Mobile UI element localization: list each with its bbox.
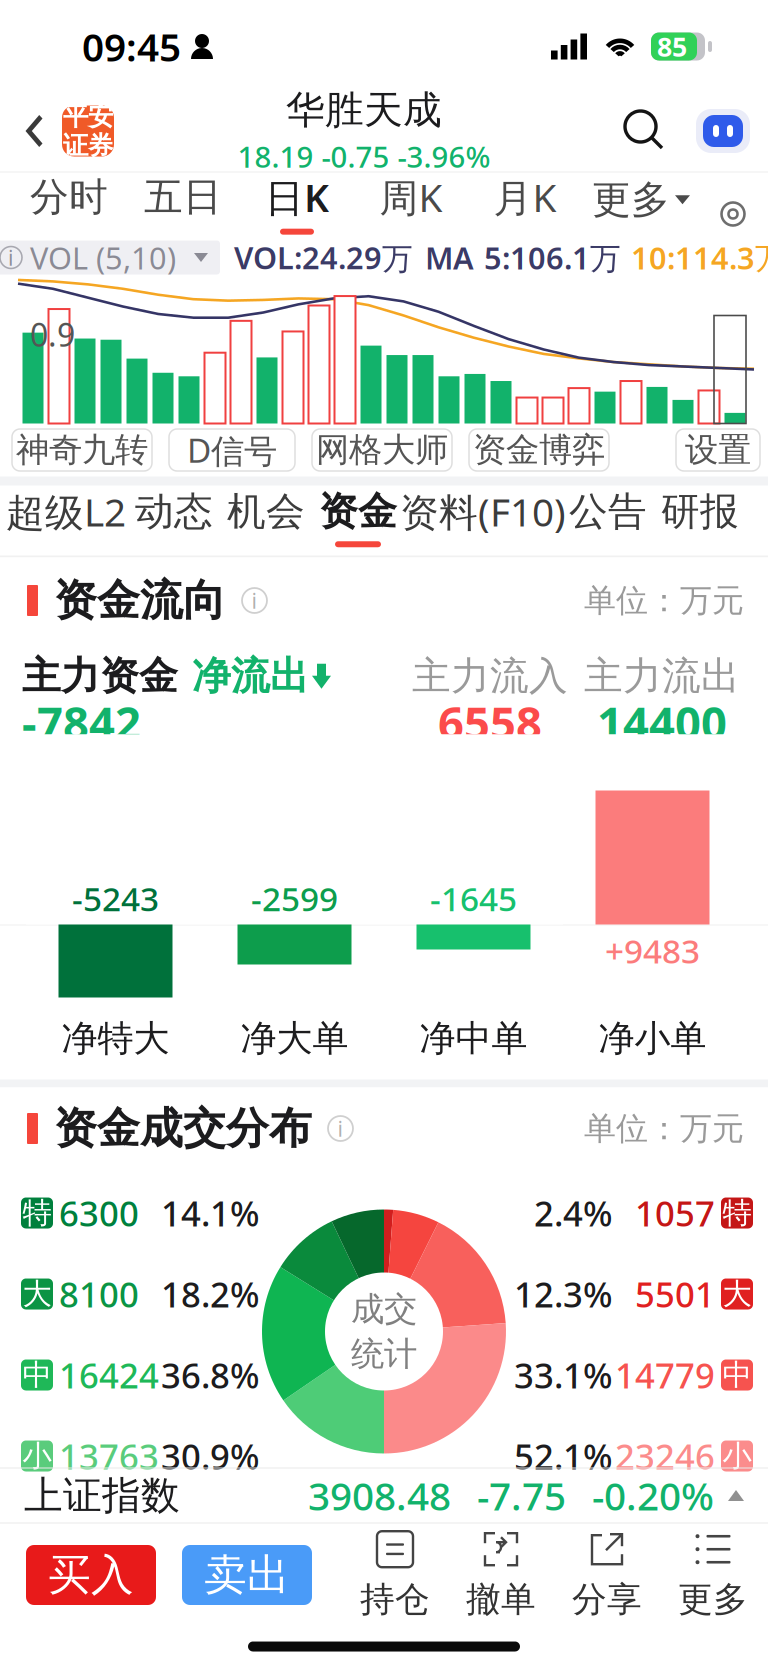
button[interactable]: 分享 (554, 1533, 660, 1617)
button[interactable]: 五日 (126, 172, 240, 239)
button[interactable]: D信号 (169, 429, 295, 471)
staticText: 52.1% (514, 1433, 613, 1479)
staticText: i (337, 1114, 343, 1143)
staticText: 5:106.1万 (484, 237, 621, 278)
staticText: 资金博弈 (473, 429, 605, 470)
staticText: 成交 (351, 1289, 417, 1329)
button[interactable]: 月K (468, 172, 582, 239)
staticText: 周K (379, 171, 442, 223)
staticText: 5501 (635, 1271, 715, 1317)
staticText: 净小单 (598, 1016, 706, 1061)
staticText: 买入 (48, 1549, 134, 1601)
staticText: 上证指数 (24, 1472, 180, 1519)
staticText: -0.20% (592, 1470, 714, 1521)
staticText: 16424 (59, 1352, 159, 1398)
staticText: 特 (722, 1195, 751, 1231)
staticText: 资金流向 (54, 574, 226, 627)
staticText: 净大单 (240, 1016, 348, 1061)
staticText: 14.1% (161, 1190, 260, 1236)
button[interactable]: 神奇九转 (12, 429, 152, 471)
staticText: 卖出 (204, 1549, 290, 1601)
staticText: 公告 (569, 488, 647, 535)
staticText: 18.2% (161, 1271, 260, 1317)
staticText: 神奇九转 (16, 429, 148, 470)
staticText: 分享 (572, 1578, 642, 1621)
staticText: 日K (265, 171, 329, 223)
staticText: 36.8% (161, 1352, 260, 1398)
staticText: 33.1% (514, 1352, 613, 1398)
staticText: 8100 (59, 1271, 139, 1317)
button[interactable]: 买入 (26, 1545, 156, 1605)
button[interactable]: 设置 (676, 429, 760, 471)
staticText: -5243 (72, 876, 159, 920)
staticText: 分时 (30, 173, 108, 221)
staticText: 更多 (592, 176, 670, 223)
staticText: 单位：万元 (584, 581, 744, 620)
staticText: -7.75 (477, 1470, 566, 1521)
staticText: 撤单 (466, 1578, 536, 1621)
button[interactable]: 平安证券 (62, 105, 114, 156)
staticText: 华胜天成 (286, 86, 442, 134)
staticText: 10:114.3万 (631, 237, 768, 278)
button[interactable]: 日K (240, 172, 354, 239)
button[interactable]: 设置 (704, 172, 762, 239)
staticText: 1057 (635, 1190, 715, 1236)
button[interactable]: 持仓 (342, 1533, 448, 1617)
button[interactable]: 网格大师 (312, 429, 452, 471)
button[interactable]: 资金 (312, 485, 404, 555)
staticText: 主力流入 (412, 652, 568, 700)
staticText: 6300 (59, 1190, 139, 1236)
staticText: D信号 (187, 428, 277, 472)
button[interactable]: 研报 (654, 485, 746, 555)
staticText: 13763 (59, 1433, 159, 1479)
staticText: 动态 (135, 488, 213, 535)
staticText: 资金成交分布 (54, 1102, 312, 1155)
button[interactable]: 搜索 (614, 110, 694, 152)
staticText: 2.4% (534, 1190, 613, 1236)
staticText: 3908.48 (308, 1470, 451, 1521)
button[interactable]: 撤单 (448, 1533, 554, 1617)
staticText: 30.9% (161, 1433, 260, 1479)
staticText: 资金 (319, 488, 397, 535)
staticText: 超级L2 (6, 486, 126, 537)
button[interactable]: 更多 (582, 172, 700, 239)
staticText: -1645 (430, 876, 517, 920)
staticText: 23246 (615, 1433, 715, 1479)
staticText: 统计 (351, 1333, 417, 1374)
staticText: 网格大师 (316, 429, 448, 470)
staticText: 中 (722, 1357, 751, 1393)
button[interactable]: 机会 (220, 485, 312, 555)
staticText: 证券 (63, 130, 113, 161)
staticText: 净中单 (419, 1016, 527, 1061)
staticText: 特 (22, 1195, 51, 1231)
button[interactable]: 资金博弈 (469, 429, 609, 471)
staticText: 机会 (227, 488, 305, 535)
staticText: 小 (722, 1438, 751, 1474)
button[interactable]: 公告 (562, 485, 654, 555)
staticText: 小 (22, 1438, 51, 1474)
button[interactable]: 智能助手 (694, 107, 752, 155)
staticText: 大 (22, 1276, 51, 1312)
staticText: 更多 (678, 1578, 748, 1621)
staticText: 持仓 (360, 1578, 430, 1621)
staticText: 平安 (63, 101, 113, 132)
button[interactable]: 动态 (128, 485, 220, 555)
button[interactable]: 资料(F10) (404, 485, 562, 555)
button[interactable]: 上证指数 (0, 1468, 768, 1522)
button[interactable]: 周K (354, 172, 468, 239)
staticText: 09:45 (82, 21, 181, 72)
button[interactable]: 卖出 (182, 1545, 312, 1605)
staticText: 14400 (597, 692, 727, 752)
staticText: +9483 (605, 928, 700, 973)
staticText: VOL (5,10) (30, 237, 176, 278)
staticText: -2599 (251, 876, 338, 920)
staticText: 资料(F10) (400, 486, 566, 537)
staticText: 主力流出 (584, 652, 740, 700)
button[interactable]: 返回 (0, 90, 62, 171)
staticText: 净流出 (192, 652, 309, 700)
button[interactable]: 超级L2 (4, 485, 128, 555)
staticText: 6558 (438, 692, 542, 752)
button[interactable]: 分时 (12, 172, 126, 239)
button[interactable]: 更多 (660, 1533, 766, 1617)
staticText: 研报 (661, 488, 739, 535)
